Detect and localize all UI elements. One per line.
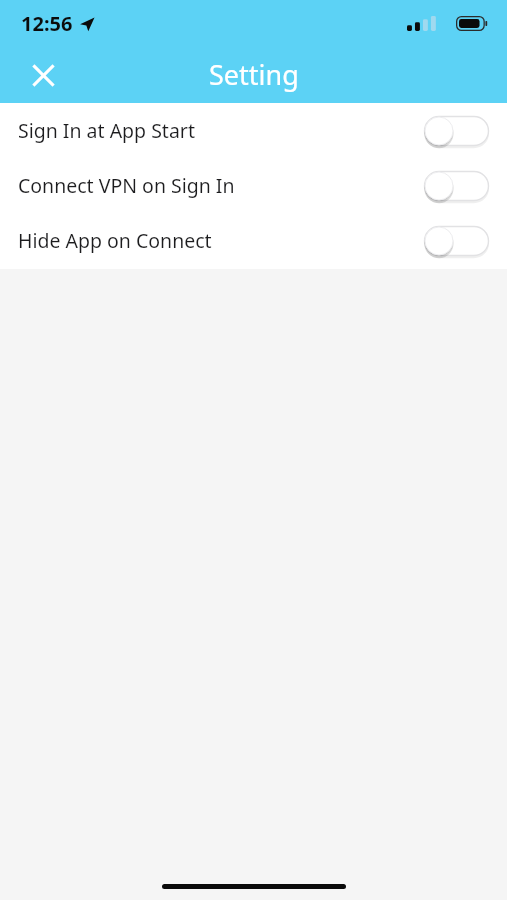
other: Toggle — [424, 167, 490, 205]
button[interactable]: Sign In at App Start — [0, 103, 507, 158]
button[interactable]: Close — [20, 52, 66, 98]
staticText: 12:56 — [21, 10, 73, 37]
other: Toggle — [424, 222, 490, 260]
staticText: Sign In at App Start — [18, 117, 424, 144]
staticText: Hide App on Connect — [18, 227, 424, 254]
staticText: Connect VPN on Sign In — [18, 172, 424, 199]
button[interactable]: Hide App on Connect — [0, 213, 507, 268]
staticText: Setting — [209, 56, 299, 93]
other: Toggle — [424, 112, 490, 150]
button[interactable]: Connect VPN on Sign In — [0, 158, 507, 213]
